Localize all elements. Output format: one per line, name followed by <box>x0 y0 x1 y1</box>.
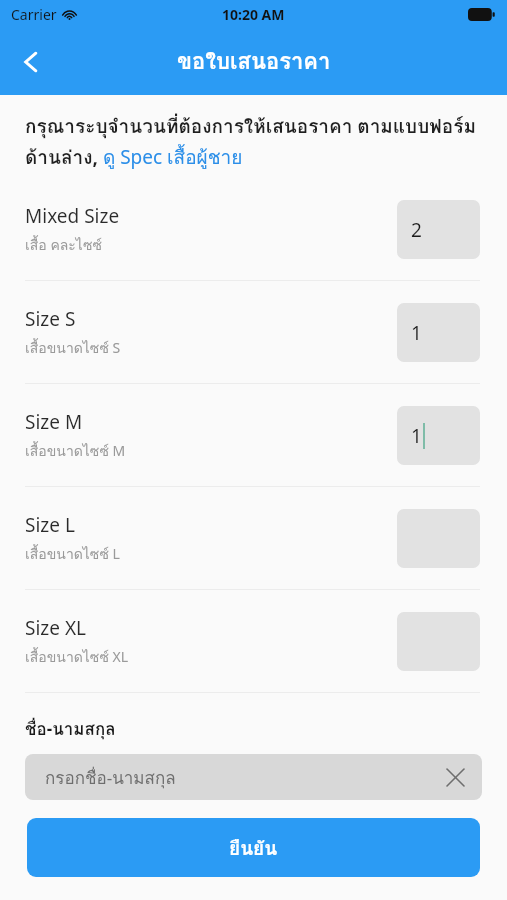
staticText: 10:20 AM <box>222 5 285 24</box>
staticText: Size S <box>25 306 76 332</box>
button[interactable]: Size L <box>0 487 507 589</box>
staticText: 2 <box>411 217 422 243</box>
button[interactable]: Quantity for Mixed Size <box>397 200 480 259</box>
staticText: Size XL <box>25 615 87 641</box>
staticText: กรอกชื่อ-นามสกุล <box>45 764 176 791</box>
staticText: ชื่อ-นามสกุล <box>25 715 116 742</box>
button[interactable]: Back <box>8 39 54 85</box>
staticText: เสื้อขนาดไซซ์ M <box>25 440 126 462</box>
staticText: เสื้อขนาดไซซ์ S <box>25 337 121 359</box>
button[interactable]: Size M <box>0 384 507 486</box>
staticText: Mixed Size <box>25 203 120 229</box>
button[interactable]: Size S <box>0 281 507 383</box>
staticText: Carrier <box>11 5 57 24</box>
button[interactable]: Size XL <box>0 590 507 692</box>
button[interactable]: Quantity for Size M <box>397 406 480 465</box>
button[interactable]: Clear text <box>442 764 468 790</box>
staticText: 1 <box>411 320 422 346</box>
button[interactable]: กรอกชื่อ-นามสกุล <box>25 754 482 800</box>
staticText: เสื้อขนาดไซซ์ L <box>25 543 120 565</box>
button[interactable]: Quantity for Size S <box>397 303 480 362</box>
button[interactable]: Mixed Size <box>0 178 507 280</box>
staticText: ขอใบเสนอราคา <box>177 44 331 79</box>
staticText: เสื้อ คละไซซ์ <box>25 234 102 256</box>
button[interactable]: ยืนยัน <box>27 818 480 877</box>
staticText: กรุณาระบุจำนวนที่ต้องการให้เสนอราคา ตามแ… <box>25 111 482 172</box>
staticText: ยืนยัน <box>229 833 278 863</box>
staticText: Size L <box>25 512 75 538</box>
staticText: เสื้อขนาดไซซ์ XL <box>25 646 129 668</box>
staticText: Size M <box>25 409 83 435</box>
staticText: 1 <box>411 423 422 449</box>
